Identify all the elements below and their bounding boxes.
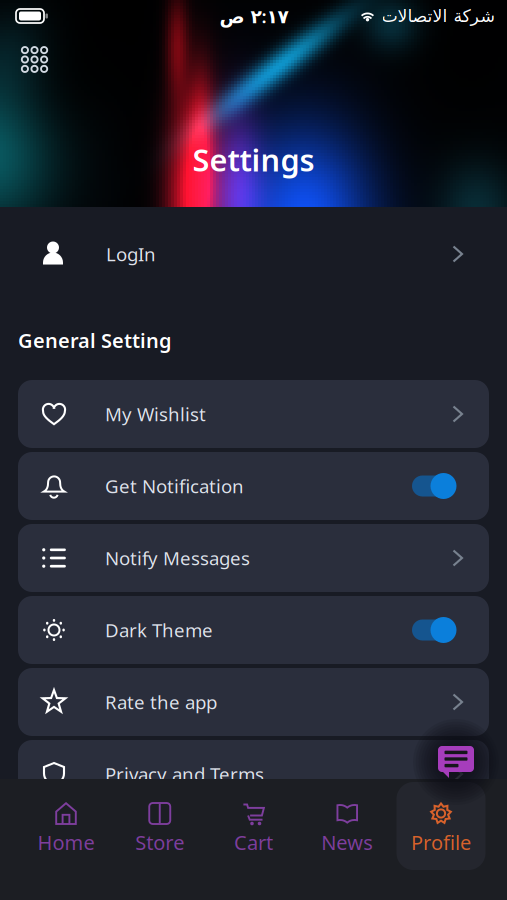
button[interactable]: My Wishlist — [18, 380, 489, 448]
staticText: Cart — [234, 829, 273, 856]
staticText: My Wishlist — [105, 402, 206, 426]
button[interactable]: Menu — [22, 48, 47, 71]
staticText: Get Notification — [105, 474, 244, 498]
button[interactable]: Notify Messages — [18, 524, 489, 592]
button[interactable]: Dark Theme — [18, 596, 489, 664]
staticText: Home — [37, 829, 94, 856]
staticText: General Setting — [18, 327, 172, 354]
button[interactable]: Chat — [413, 719, 499, 805]
staticText: شركة الاتصالات — [381, 6, 495, 26]
staticText: Profile — [411, 829, 471, 856]
staticText: Notify Messages — [105, 546, 250, 570]
button[interactable]: Rate the app — [18, 668, 489, 736]
staticText: Settings — [192, 139, 314, 180]
staticText: Store — [135, 829, 184, 856]
button[interactable]: Store — [115, 782, 204, 870]
button[interactable]: Privacy and Terms — [18, 740, 489, 808]
button[interactable]: News — [303, 782, 392, 870]
button[interactable]: Get Notification — [18, 452, 489, 520]
staticText: LogIn — [106, 242, 156, 266]
staticText: ٢:١٧ ص — [219, 4, 288, 28]
button[interactable]: Profile — [396, 782, 485, 870]
staticText: Dark Theme — [105, 618, 213, 642]
staticText: Rate the app — [105, 690, 217, 714]
button[interactable]: Home — [21, 782, 110, 870]
staticText: News — [321, 829, 373, 856]
button[interactable]: LogIn — [0, 221, 507, 287]
button[interactable]: Cart — [209, 782, 298, 870]
staticText: Privacy and Terms — [105, 762, 264, 786]
